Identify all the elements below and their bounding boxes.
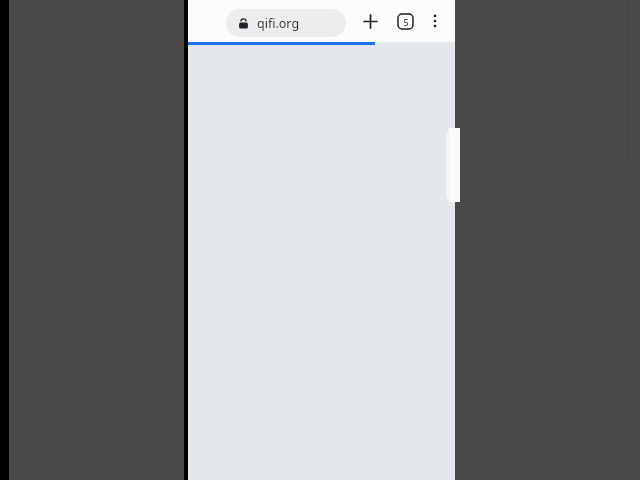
button[interactable]: More options	[420, 6, 450, 36]
button[interactable]: Switch tabs, 5 open tabs	[390, 6, 420, 36]
staticText: 5	[403, 16, 409, 28]
staticText: qifi.org	[257, 15, 300, 32]
button[interactable]: New tab	[355, 6, 385, 36]
button[interactable]: qifi.org	[226, 9, 346, 37]
